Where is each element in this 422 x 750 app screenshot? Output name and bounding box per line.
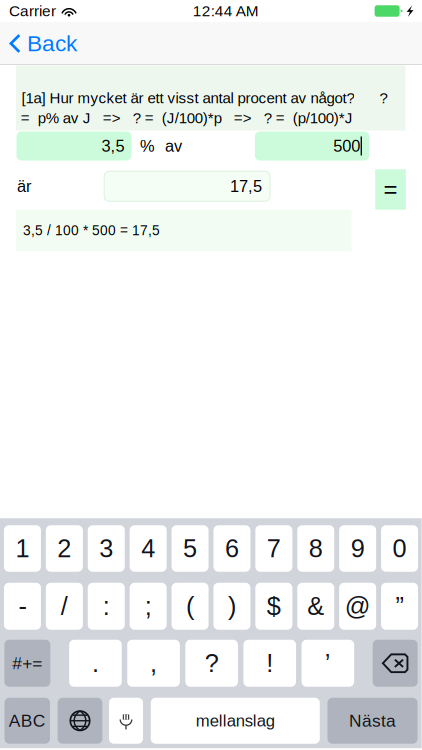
button[interactable]: ; — [130, 583, 167, 630]
staticText: 2 — [57, 534, 71, 563]
button[interactable]: $ — [255, 583, 292, 630]
button[interactable]: Dictation — [109, 698, 143, 744]
staticText: = p% av J =‌> ? = (J/100)*p =‌> ? = (p/1… — [21, 109, 353, 126]
button[interactable]: Delete — [373, 640, 418, 687]
staticText: ( — [186, 592, 194, 620]
staticText: 0 — [392, 534, 406, 563]
button[interactable]: mellanslag — [151, 698, 320, 744]
button[interactable]: 6 — [213, 525, 250, 572]
staticText: % av — [140, 137, 182, 155]
staticText: är — [17, 177, 31, 195]
staticText: & — [307, 592, 324, 620]
button[interactable]: - — [4, 583, 41, 630]
button[interactable]: & — [297, 583, 334, 630]
staticText: ! — [266, 649, 273, 677]
staticText: - — [18, 592, 26, 620]
button[interactable]: ! — [243, 640, 296, 687]
staticText: , — [150, 649, 157, 677]
staticText: 7 — [267, 534, 281, 563]
staticText: = — [383, 176, 397, 203]
button[interactable]: ( — [171, 583, 208, 630]
button[interactable]: 7 — [255, 525, 292, 572]
staticText: 3,5 / 100 * 500 = 17,5 — [23, 223, 160, 238]
staticText: . — [92, 649, 99, 677]
staticText: ABC — [9, 711, 46, 730]
staticText: ? — [205, 649, 219, 677]
staticText: #+= — [12, 654, 42, 673]
button[interactable]: ABC — [4, 698, 50, 744]
staticText: ? — [379, 90, 387, 106]
staticText: 1 — [15, 534, 29, 563]
button[interactable]: #+= — [4, 640, 50, 687]
staticText: ; — [145, 592, 152, 620]
staticText: ) — [228, 592, 236, 620]
staticText: ” — [395, 592, 403, 620]
staticText: 3 — [99, 534, 113, 563]
button[interactable]: . — [69, 640, 122, 687]
button[interactable]: : — [88, 583, 125, 630]
staticText: Back — [27, 31, 77, 56]
button[interactable]: 1 — [4, 525, 41, 572]
staticText: mellanslag — [196, 711, 275, 730]
staticText: / — [61, 592, 68, 620]
button[interactable]: ) — [213, 583, 250, 630]
button[interactable]: / — [46, 583, 83, 630]
button[interactable]: = — [375, 169, 406, 210]
button[interactable]: @ — [339, 583, 376, 630]
staticText: ’ — [325, 649, 331, 677]
button[interactable]: 4 — [130, 525, 167, 572]
staticText: [1a] Hur mycket är ett visst antal proce… — [21, 90, 354, 106]
staticText: 500 — [333, 137, 360, 155]
staticText: 4 — [141, 534, 155, 563]
button[interactable]: Back — [0, 22, 89, 65]
button[interactable]: 5 — [171, 525, 208, 572]
staticText: 8 — [309, 534, 323, 563]
button[interactable]: 8 — [297, 525, 334, 572]
button[interactable]: 9 — [339, 525, 376, 572]
staticText: 5 — [183, 534, 197, 563]
button[interactable]: 3 — [88, 525, 125, 572]
staticText: @ — [345, 592, 371, 620]
staticText: Carrier — [9, 2, 56, 19]
staticText: Nästa — [349, 711, 396, 730]
button[interactable]: ” — [381, 583, 418, 630]
button[interactable]: , — [127, 640, 180, 687]
staticText: $ — [267, 592, 281, 620]
staticText: 3,5 — [101, 137, 124, 155]
staticText: 9 — [351, 534, 365, 563]
staticText: : — [103, 592, 110, 620]
button[interactable]: 2 — [46, 525, 83, 572]
button[interactable]: Nästa — [327, 698, 417, 744]
button[interactable]: ’ — [301, 640, 354, 687]
button[interactable]: ? — [185, 640, 238, 687]
staticText: 17,5 — [230, 177, 262, 195]
staticText: 12:44 AM — [193, 2, 259, 19]
button[interactable]: 0 — [381, 525, 418, 572]
button[interactable]: Next keyboard — [58, 698, 102, 744]
staticText: 6 — [225, 534, 239, 563]
